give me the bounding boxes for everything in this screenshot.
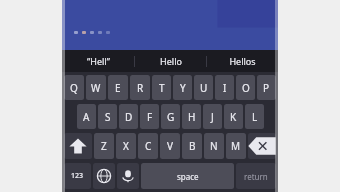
button[interactable]: L xyxy=(245,104,264,129)
staticText: Y xyxy=(180,81,186,95)
button[interactable]: I xyxy=(215,75,234,100)
staticText: V xyxy=(167,139,173,153)
staticText: S xyxy=(105,110,111,124)
staticText: 123 xyxy=(71,171,84,181)
button[interactable]: Change keyboard xyxy=(93,163,115,189)
button[interactable]: X xyxy=(116,133,136,159)
staticText: W xyxy=(91,81,101,95)
staticText: space xyxy=(177,171,199,182)
button[interactable]: M xyxy=(226,133,246,159)
button[interactable]: Hellos xyxy=(207,50,278,72)
button[interactable]: return xyxy=(236,163,276,189)
button[interactable]: G xyxy=(161,104,180,129)
staticText: U xyxy=(200,81,208,95)
staticText: M xyxy=(231,139,241,153)
staticText: “Hell” xyxy=(87,55,110,67)
button[interactable]: space xyxy=(141,163,234,189)
button[interactable]: Y xyxy=(173,75,192,100)
staticText: X xyxy=(123,139,129,153)
staticText: G xyxy=(167,110,175,124)
staticText: N xyxy=(210,139,218,153)
button[interactable]: D xyxy=(119,104,138,129)
button[interactable]: 123 xyxy=(64,163,91,189)
button[interactable]: Q xyxy=(64,75,84,100)
button[interactable]: “Hell” xyxy=(62,50,134,72)
staticText: D xyxy=(125,110,133,124)
staticText: Z xyxy=(101,139,107,153)
button[interactable]: Voice input xyxy=(117,163,139,189)
staticText: B xyxy=(189,139,196,153)
staticText: R xyxy=(137,81,144,95)
staticText: K xyxy=(230,110,237,124)
button[interactable]: O xyxy=(236,75,255,100)
staticText: H xyxy=(188,110,196,124)
button[interactable]: U xyxy=(194,75,213,100)
button[interactable]: K xyxy=(224,104,243,129)
staticText: F xyxy=(147,110,153,124)
button[interactable]: W xyxy=(86,75,106,100)
staticText: E xyxy=(115,81,121,95)
button[interactable]: R xyxy=(130,75,150,100)
staticText: O xyxy=(242,81,250,95)
button[interactable]: A xyxy=(77,104,96,129)
button[interactable]: H xyxy=(182,104,201,129)
button[interactable]: J xyxy=(203,104,222,129)
staticText: P xyxy=(263,81,270,95)
button[interactable]: P xyxy=(257,75,276,100)
button[interactable]: V xyxy=(160,133,180,159)
staticText: I xyxy=(223,81,227,95)
staticText: A xyxy=(83,110,90,124)
staticText: Q xyxy=(70,81,78,95)
staticText: Hellos xyxy=(229,55,256,67)
staticText: Hello xyxy=(160,55,182,67)
button[interactable]: Backspace xyxy=(248,133,276,159)
staticText: return xyxy=(244,171,268,182)
staticText: L xyxy=(252,110,258,124)
button[interactable]: E xyxy=(108,75,128,100)
button[interactable]: Hello xyxy=(135,50,206,72)
button[interactable]: T xyxy=(152,75,171,100)
button[interactable]: Z xyxy=(94,133,114,159)
button[interactable]: S xyxy=(98,104,117,129)
button[interactable]: C xyxy=(138,133,158,159)
staticText: T xyxy=(159,81,165,95)
button[interactable]: F xyxy=(140,104,159,129)
button[interactable]: N xyxy=(204,133,224,159)
staticText: J xyxy=(211,110,214,124)
staticText: C xyxy=(145,139,152,153)
button[interactable]: B xyxy=(182,133,202,159)
button[interactable]: Shift xyxy=(64,133,92,159)
